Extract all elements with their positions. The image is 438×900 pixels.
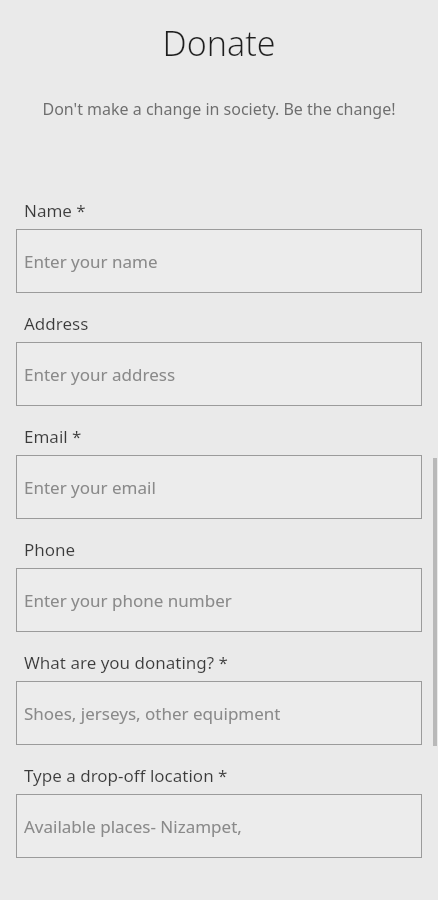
staticText: Address	[24, 312, 422, 335]
button[interactable]: Enter your phone number	[16, 568, 422, 632]
staticText: Shoes, jerseys, other equipment	[24, 702, 281, 725]
staticText: Email *	[24, 425, 422, 448]
staticText: Phone	[24, 538, 422, 561]
button[interactable]: Available places- Nizampet,	[16, 794, 422, 858]
staticText: Available places- Nizampet,	[24, 815, 242, 838]
staticText: Type a drop-off location *	[24, 764, 422, 787]
staticText: Donate	[16, 20, 422, 66]
staticText: What are you donating? *	[24, 651, 422, 674]
staticText: Enter your email	[24, 476, 156, 499]
button[interactable]: Shoes, jerseys, other equipment	[16, 681, 422, 745]
staticText: Enter your name	[24, 250, 158, 273]
staticText: Enter your address	[24, 363, 176, 386]
button[interactable]: Enter your address	[16, 342, 422, 406]
staticText: Enter your phone number	[24, 589, 232, 612]
button[interactable]: Enter your email	[16, 455, 422, 519]
staticText: Don't make a change in society. Be the c…	[36, 98, 402, 120]
button[interactable]: Enter your name	[16, 229, 422, 293]
staticText: Name *	[24, 199, 422, 222]
